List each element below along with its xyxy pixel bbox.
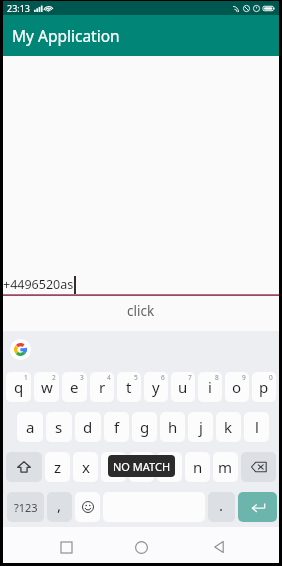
button[interactable]: u bbox=[171, 372, 195, 402]
button[interactable]: ?123 bbox=[7, 492, 44, 522]
staticText: 4 bbox=[107, 373, 111, 382]
button[interactable]: r bbox=[90, 372, 114, 402]
staticText: 7 bbox=[188, 373, 192, 382]
button[interactable]: b bbox=[157, 452, 182, 482]
button[interactable]: p bbox=[252, 372, 276, 402]
staticText: My Application bbox=[12, 25, 120, 46]
button[interactable]: Enter bbox=[238, 492, 277, 522]
staticText: p bbox=[259, 377, 269, 397]
staticText: c bbox=[110, 457, 118, 477]
staticText: 5 bbox=[134, 373, 138, 382]
staticText: ?123 bbox=[14, 500, 38, 515]
button[interactable]: c bbox=[101, 452, 126, 482]
staticText: l bbox=[255, 417, 259, 437]
button[interactable]: t bbox=[117, 372, 141, 402]
staticText: 3 bbox=[80, 373, 84, 382]
button[interactable]: f bbox=[104, 412, 129, 442]
button[interactable]: n bbox=[185, 452, 210, 482]
staticText: f bbox=[114, 417, 120, 437]
button[interactable]: Period bbox=[208, 492, 235, 522]
staticText: , bbox=[57, 495, 62, 515]
button[interactable]: Recents bbox=[49, 530, 83, 564]
staticText: n bbox=[193, 457, 203, 477]
staticText: y bbox=[152, 377, 160, 397]
staticText: e bbox=[70, 377, 79, 397]
button[interactable]: Comma bbox=[47, 492, 72, 522]
staticText: +4496520as bbox=[3, 276, 74, 293]
button[interactable]: x bbox=[73, 452, 98, 482]
staticText: w bbox=[41, 377, 53, 397]
button[interactable]: e bbox=[62, 372, 87, 402]
staticText: q bbox=[14, 377, 24, 397]
staticText: o bbox=[232, 377, 242, 397]
staticText: j bbox=[199, 417, 203, 437]
staticText: click bbox=[127, 302, 155, 320]
staticText: x bbox=[82, 457, 90, 477]
staticText: m bbox=[218, 457, 233, 477]
button[interactable]: Google Assistant bbox=[10, 339, 31, 360]
button[interactable]: s bbox=[46, 412, 72, 442]
staticText: h bbox=[168, 417, 178, 437]
button[interactable]: y bbox=[144, 372, 168, 402]
button[interactable]: click bbox=[3, 296, 279, 323]
staticText: . bbox=[219, 495, 224, 515]
button[interactable]: Home bbox=[124, 530, 158, 564]
staticText: b bbox=[165, 457, 175, 477]
staticText: t bbox=[126, 377, 132, 397]
staticText: r bbox=[99, 377, 106, 397]
staticText: 8 bbox=[215, 373, 219, 382]
button[interactable]: j bbox=[188, 412, 213, 442]
button[interactable]: Shift bbox=[6, 452, 42, 482]
staticText: k bbox=[224, 417, 233, 437]
staticText: 23:13 bbox=[7, 2, 31, 14]
staticText: g bbox=[140, 417, 150, 437]
button[interactable]: w bbox=[34, 372, 59, 402]
button[interactable]: o bbox=[225, 372, 249, 402]
staticText: d bbox=[83, 417, 93, 437]
button[interactable]: q bbox=[6, 372, 31, 402]
button[interactable]: v bbox=[129, 452, 154, 482]
button[interactable]: l bbox=[244, 412, 269, 442]
staticText: 2 bbox=[52, 373, 56, 382]
staticText: NO MATCH bbox=[113, 459, 171, 474]
staticText: u bbox=[178, 377, 188, 397]
button[interactable]: a bbox=[17, 412, 43, 442]
button[interactable]: i bbox=[198, 372, 222, 402]
button[interactable]: z bbox=[45, 452, 70, 482]
staticText: 0 bbox=[269, 373, 273, 382]
staticText: 1 bbox=[24, 373, 28, 382]
button[interactable]: Backspace bbox=[241, 452, 276, 482]
button[interactable]: h bbox=[160, 412, 185, 442]
button[interactable]: g bbox=[132, 412, 157, 442]
staticText: i bbox=[208, 377, 212, 397]
button[interactable]: k bbox=[216, 412, 241, 442]
button[interactable]: d bbox=[75, 412, 101, 442]
staticText: 9 bbox=[242, 373, 246, 382]
staticText: v bbox=[138, 457, 146, 477]
staticText: a bbox=[26, 417, 35, 437]
staticText: s bbox=[55, 417, 63, 437]
button[interactable]: Back bbox=[202, 530, 236, 564]
staticText: z bbox=[54, 457, 62, 477]
button[interactable]: Emoji bbox=[75, 492, 100, 522]
button[interactable]: m bbox=[213, 452, 238, 482]
staticText: 6 bbox=[161, 373, 165, 382]
